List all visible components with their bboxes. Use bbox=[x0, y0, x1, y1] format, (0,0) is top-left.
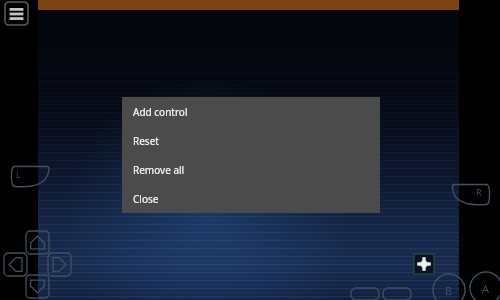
button[interactable]: Close bbox=[122, 184, 380, 213]
staticText: Reset bbox=[133, 134, 159, 148]
button[interactable]: Remove all bbox=[122, 155, 380, 184]
button[interactable]: D-pad left bbox=[4, 253, 27, 276]
staticText: Add control bbox=[133, 105, 188, 119]
button[interactable]: Start bbox=[383, 288, 411, 300]
button[interactable]: D-pad down bbox=[26, 275, 49, 298]
staticText: R bbox=[476, 186, 482, 198]
button[interactable]: D-pad up bbox=[26, 231, 49, 254]
staticText: Remove all bbox=[133, 163, 185, 177]
button[interactable]: Reset bbox=[122, 126, 380, 155]
staticText: B bbox=[445, 283, 453, 298]
button[interactable]: R shoulder button bbox=[451, 183, 491, 206]
button[interactable]: A button bbox=[469, 271, 500, 300]
button[interactable]: B button bbox=[432, 273, 466, 300]
button[interactable]: D-pad right bbox=[48, 253, 71, 276]
button[interactable]: Menu bbox=[5, 2, 28, 25]
button[interactable]: L shoulder button bbox=[10, 165, 50, 188]
button[interactable]: Toggle fullscreen bbox=[414, 254, 434, 274]
staticText: A bbox=[482, 281, 490, 296]
staticText: L bbox=[16, 168, 21, 180]
button[interactable]: Add control bbox=[122, 97, 380, 126]
button[interactable]: Select bbox=[351, 288, 379, 300]
staticText: Close bbox=[133, 192, 159, 206]
